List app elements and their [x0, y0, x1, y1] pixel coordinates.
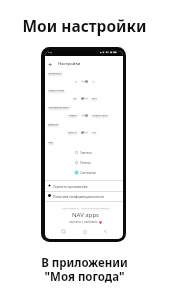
- staticText: Политика конфиденциальности: [53, 194, 105, 198]
- other: Back: [49, 63, 52, 66]
- staticText: Тёмная: [80, 161, 91, 165]
- staticText: °C: [74, 80, 77, 83]
- staticText: Температура: [48, 72, 62, 75]
- staticText: "Моя погода": [0, 269, 169, 285]
- staticText: °F: [92, 80, 95, 83]
- button[interactable]: Светлая: [45, 148, 123, 158]
- staticText: Градусы: [68, 114, 77, 117]
- button[interactable]: Системная: [45, 168, 123, 178]
- staticText: Системная: [80, 171, 96, 175]
- staticText: Направление ветра: [48, 106, 69, 109]
- button[interactable]: Градусы: [45, 111, 123, 121]
- button[interactable]: Home: [83, 230, 87, 234]
- staticText: NAV apps: [72, 211, 99, 219]
- button[interactable]: Тёмная: [45, 158, 123, 168]
- staticText: мм.рт.ст: [68, 131, 77, 134]
- staticText: Тема: [48, 141, 54, 144]
- staticText: Светлая: [80, 151, 92, 155]
- staticText: Настройки: [58, 61, 81, 67]
- staticText: 9:54: [48, 51, 53, 54]
- staticText: Мои настройки: [0, 15, 169, 36]
- staticText: Стороны света: [92, 114, 108, 117]
- button[interactable]: Политика конфиденциальности: [45, 191, 123, 201]
- button[interactable]: м/с: [45, 94, 123, 104]
- button[interactable]: мм.рт.ст: [45, 128, 123, 138]
- button[interactable]: Recent apps: [62, 230, 65, 233]
- staticText: сделано с любовью: [69, 220, 98, 224]
- button[interactable]: Back: [45, 57, 123, 70]
- button[interactable]: Back: [104, 230, 107, 233]
- staticText: Скорость ветра: [48, 89, 65, 92]
- button[interactable]: Оценить приложение: [45, 181, 123, 191]
- staticText: гПа: [92, 131, 96, 134]
- staticText: сайт navapps.ru почта support@navapps.ru: [62, 207, 110, 210]
- staticText: В приложении: [0, 255, 169, 271]
- staticText: Оценить приложение: [53, 184, 88, 188]
- staticText: Давление: [48, 123, 59, 126]
- staticText: м/с: [73, 97, 77, 100]
- staticText: км/ч: [92, 97, 97, 100]
- button[interactable]: °C: [45, 77, 123, 87]
